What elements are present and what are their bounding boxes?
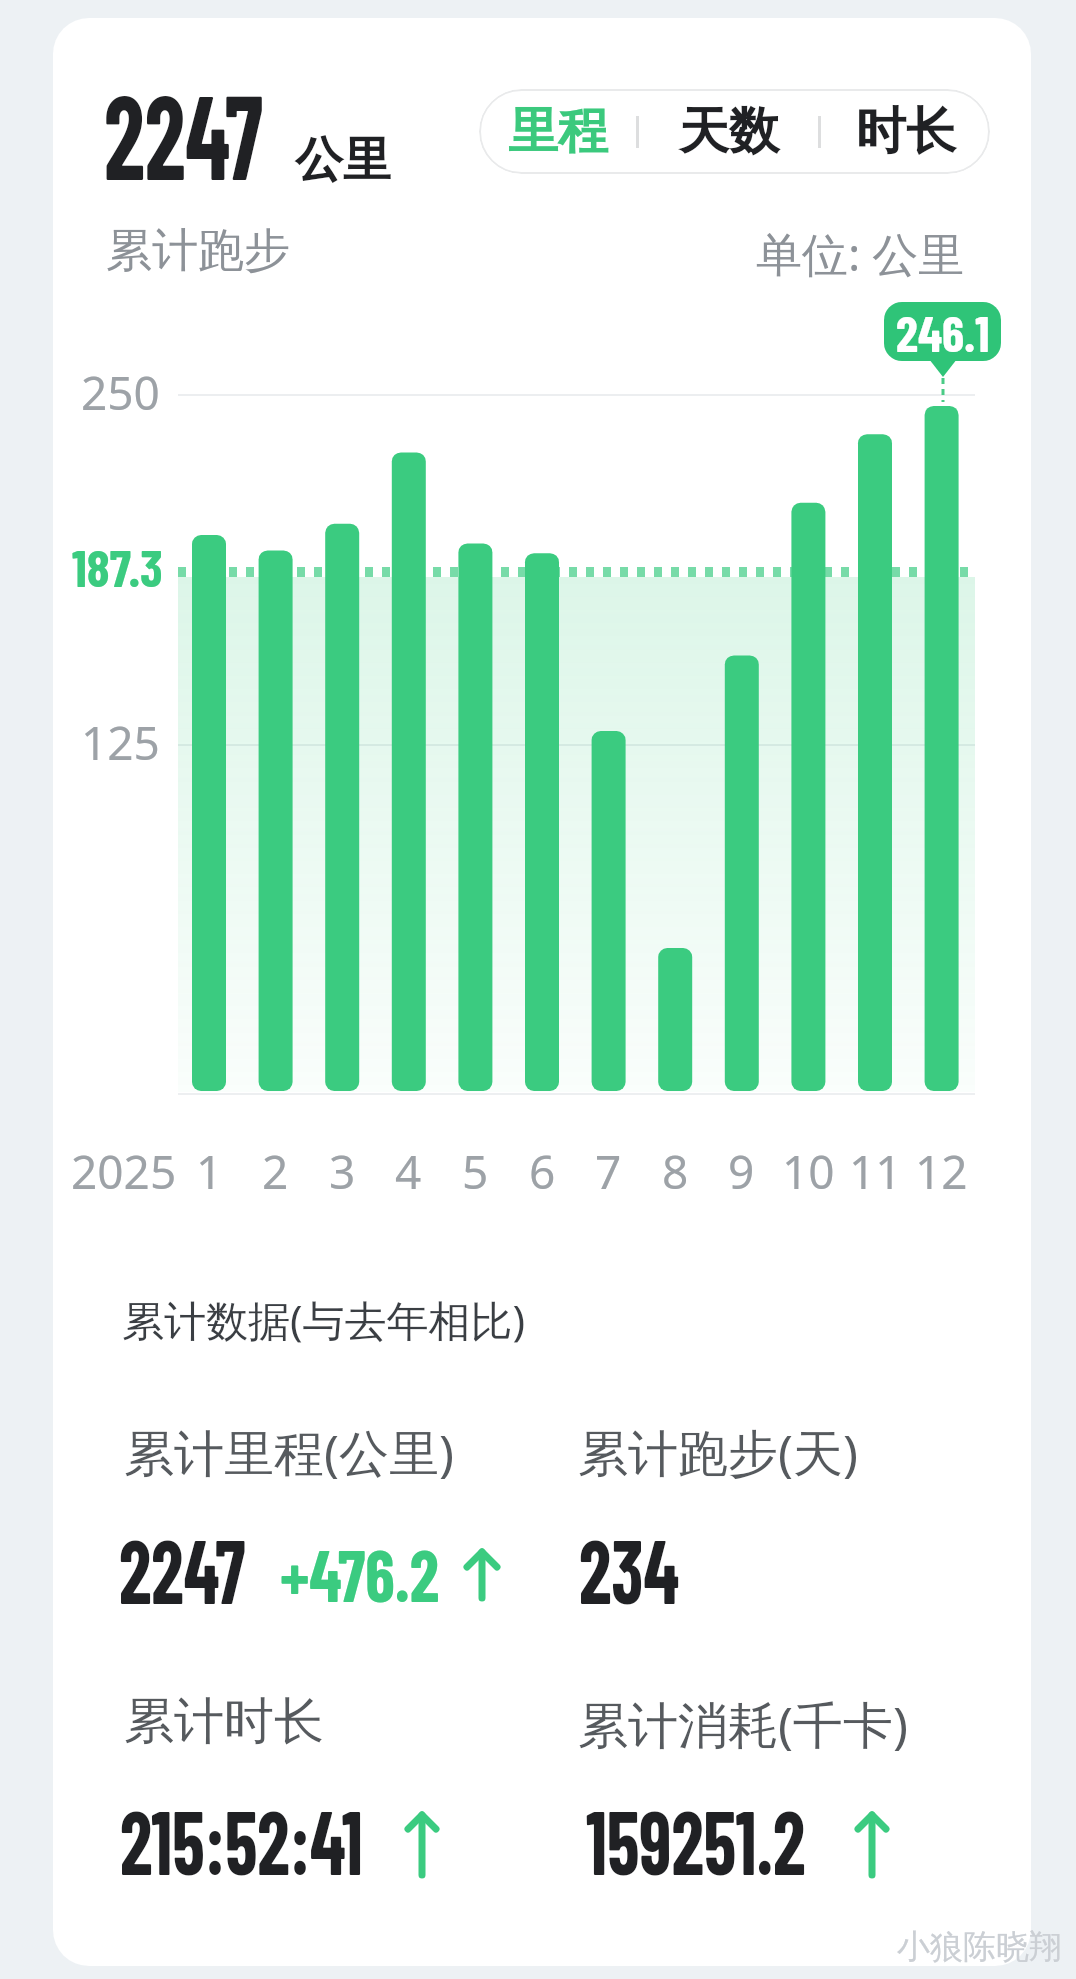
staticText: 累计里程(公里) xyxy=(124,1418,454,1486)
staticText: 246.1 xyxy=(896,302,990,361)
staticText: 2247 xyxy=(119,1514,245,1622)
staticText: 187.3 xyxy=(72,535,163,597)
staticText: 6 xyxy=(529,1140,556,1203)
staticText: 125 xyxy=(81,711,160,774)
staticText: 234 xyxy=(579,1514,680,1622)
button[interactable]: 天数 xyxy=(639,89,818,174)
button[interactable]: 里程 xyxy=(479,89,636,174)
staticText: 公里 xyxy=(295,130,391,190)
staticText: 里程 xyxy=(508,100,608,163)
staticText: 7 xyxy=(595,1140,622,1203)
staticText: 2025 xyxy=(71,1140,177,1203)
staticText: 10 xyxy=(782,1140,835,1203)
staticText: 累计消耗(千卡) xyxy=(578,1690,908,1758)
staticText: 12 xyxy=(915,1140,968,1203)
staticText: 小狼陈晓翔 xyxy=(897,1926,1062,1968)
staticText: 9 xyxy=(728,1140,755,1203)
staticText: 8 xyxy=(662,1140,689,1203)
staticText: 1 xyxy=(196,1140,223,1203)
staticText: 累计跑步(天) xyxy=(578,1418,858,1486)
staticText: +476.2 xyxy=(280,1530,439,1616)
staticText: 250 xyxy=(81,361,160,424)
staticText: 2247 xyxy=(104,61,263,204)
staticText: 215:52:41 xyxy=(120,1785,363,1893)
staticText: 3 xyxy=(329,1140,356,1203)
staticText: 4 xyxy=(395,1140,422,1203)
staticText: 累计时长 xyxy=(124,1690,324,1753)
staticText: 2 xyxy=(262,1140,289,1203)
staticText: 天数 xyxy=(679,100,779,163)
staticText: 累计数据(与去年相比) xyxy=(122,1291,526,1348)
button[interactable]: 时长 xyxy=(821,89,990,174)
staticText: 11 xyxy=(849,1140,902,1203)
staticText: 时长 xyxy=(856,100,956,163)
staticText: 单位: 公里 xyxy=(756,222,965,285)
staticText: 累计跑步 xyxy=(106,222,290,280)
button[interactable]: 246.1 xyxy=(884,302,1001,361)
staticText: 159251.2 xyxy=(586,1785,806,1893)
staticText: 5 xyxy=(462,1140,489,1203)
